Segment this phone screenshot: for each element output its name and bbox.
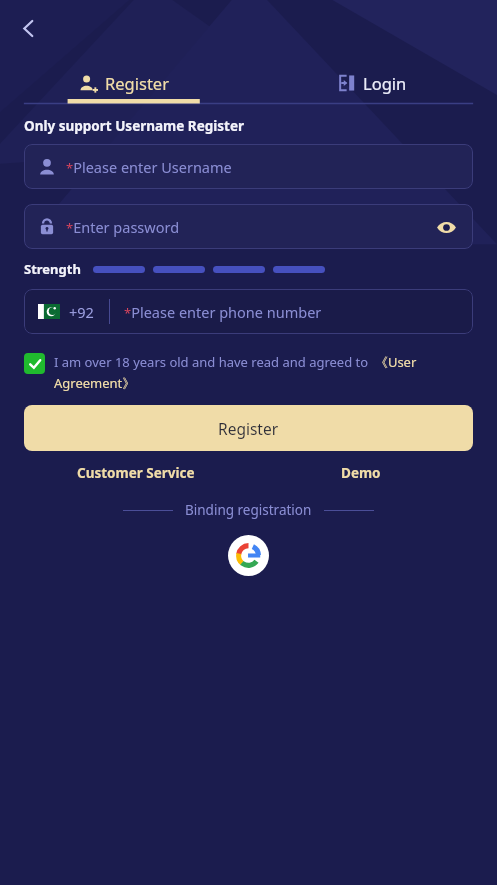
button[interactable]: I am over 18 years old and have read and…	[54, 353, 473, 392]
button[interactable]: *Please enter Username	[24, 144, 473, 189]
staticText: *Please enter phone number	[124, 302, 322, 322]
staticText: Strength	[24, 260, 81, 278]
staticText: +92	[69, 302, 94, 322]
staticText: Demo	[341, 464, 381, 482]
button[interactable]: Show password	[433, 214, 459, 240]
staticText: Register	[105, 72, 169, 94]
button[interactable]: Register	[0, 60, 248, 106]
button[interactable]: Demo	[248, 464, 473, 482]
button[interactable]: *Enter password	[24, 204, 473, 249]
staticText: Login	[363, 72, 407, 94]
staticText: Register	[218, 418, 279, 439]
staticText: *Enter password	[66, 217, 433, 237]
staticText: Only support Username Register	[24, 117, 245, 135]
button[interactable]: Register	[24, 405, 473, 451]
button[interactable]: Customer Service	[24, 464, 248, 482]
staticText: Customer Service	[77, 464, 195, 482]
staticText: Binding registration	[185, 501, 312, 519]
button[interactable]: Back	[6, 6, 50, 50]
staticText: *Please enter Username	[66, 157, 232, 177]
button[interactable]: Sign in with Google	[228, 535, 269, 576]
button[interactable]: +92	[24, 289, 473, 334]
button[interactable]: I agree	[24, 353, 45, 374]
button[interactable]: Login	[248, 60, 497, 106]
